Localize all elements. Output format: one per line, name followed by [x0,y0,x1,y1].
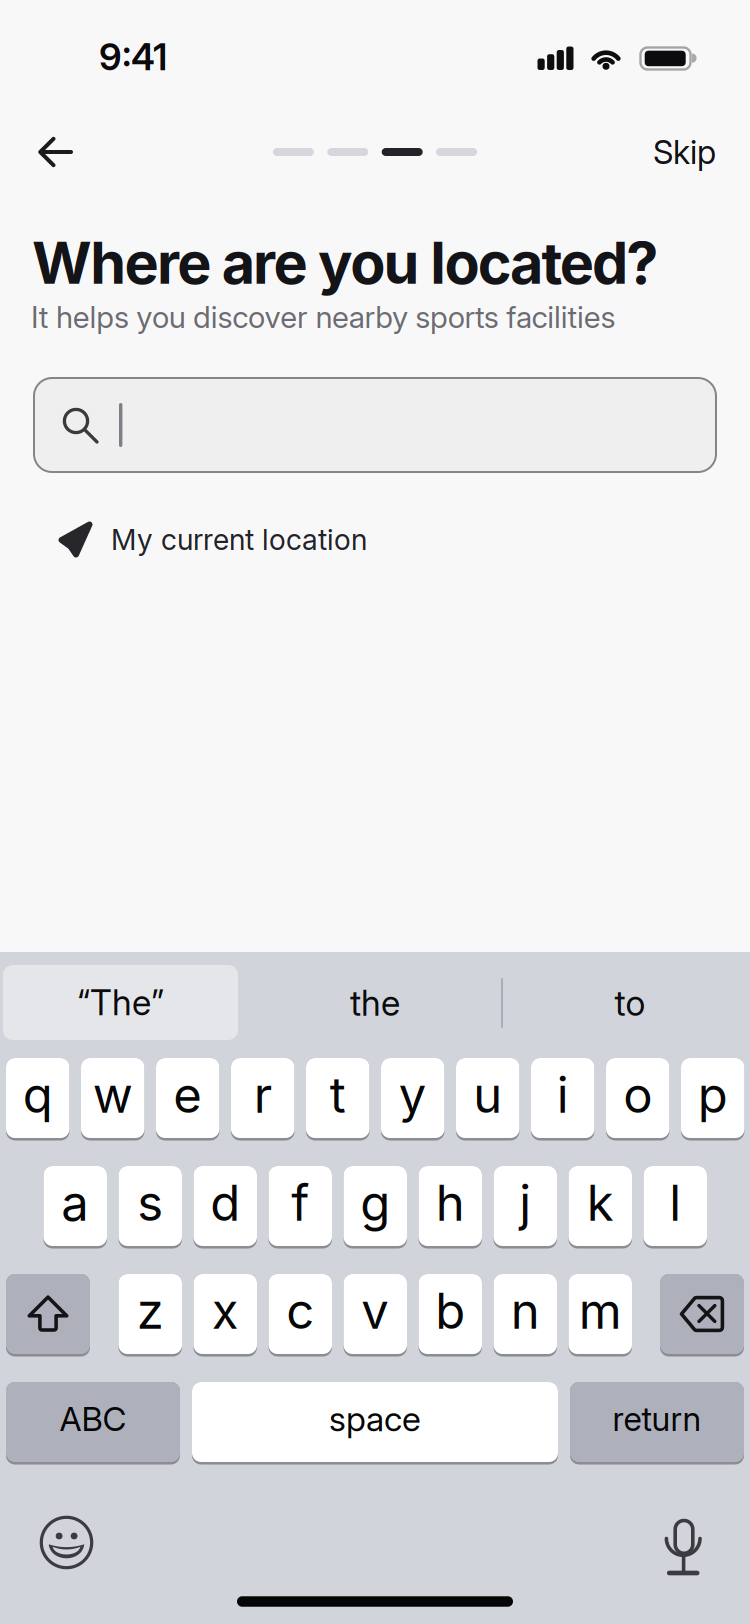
button[interactable]: e [156,1058,219,1140]
button[interactable]: f [268,1166,332,1248]
staticText: s [137,1173,163,1233]
staticText: Where are you located? [32,228,658,298]
button[interactable]: return [570,1382,744,1464]
button[interactable]: q [6,1058,69,1140]
button[interactable]: y [381,1058,444,1140]
button[interactable]: m [568,1274,632,1356]
staticText: q [23,1065,53,1125]
button[interactable]: “The” [3,965,238,1040]
staticText: t [330,1065,346,1125]
staticText: x [212,1281,239,1341]
staticText: z [137,1281,164,1341]
staticText: p [698,1065,728,1125]
button[interactable]: z [118,1274,182,1356]
staticText: k [587,1173,614,1233]
button[interactable]: v [343,1274,407,1356]
button[interactable]: j [493,1166,557,1248]
staticText: m [579,1281,622,1341]
button[interactable]: u [456,1058,519,1140]
staticText: b [435,1281,465,1341]
button[interactable]: Emoji [39,1515,93,1569]
staticText: “The” [77,981,164,1024]
staticText: l [669,1173,681,1233]
button[interactable]: Dictation [664,1518,704,1576]
button[interactable]: p [681,1058,744,1140]
button[interactable]: space [192,1382,558,1464]
staticText: u [473,1065,502,1125]
staticText: to [614,982,645,1024]
button[interactable]: d [193,1166,257,1248]
staticText: h [436,1173,465,1233]
staticText: My current location [111,522,367,557]
staticText: f [291,1173,309,1233]
staticText: c [286,1281,314,1341]
staticText: the [350,982,400,1024]
button[interactable]: o [606,1058,669,1140]
button[interactable]: Delete [660,1274,744,1356]
staticText: e [173,1065,202,1125]
button[interactable]: My current location [58,521,367,558]
staticText: ABC [59,1399,126,1439]
button[interactable]: ABC [6,1382,180,1464]
staticText: a [61,1173,89,1233]
staticText: o [623,1065,652,1125]
staticText: g [360,1173,390,1233]
staticText: Skip [653,132,716,172]
button[interactable]: g [343,1166,407,1248]
button[interactable]: Back [30,129,80,175]
button[interactable]: r [231,1058,294,1140]
staticText: return [612,1399,701,1439]
button[interactable]: x [193,1274,257,1356]
button[interactable]: Search [34,378,716,472]
button[interactable]: s [118,1166,182,1248]
button[interactable]: w [81,1058,144,1140]
button[interactable]: b [418,1274,482,1356]
staticText: v [361,1281,389,1341]
button[interactable]: Skip [647,124,722,180]
button[interactable]: l [643,1166,707,1248]
staticText: space [329,1398,421,1439]
staticText: w [93,1065,133,1125]
button[interactable]: c [268,1274,332,1356]
staticText: r [254,1065,272,1125]
button[interactable]: Shift [6,1274,90,1356]
staticText: 9:41 [99,35,167,79]
button[interactable]: t [306,1058,369,1140]
button[interactable]: n [493,1274,557,1356]
staticText: j [519,1173,531,1233]
button[interactable]: the [275,965,475,1040]
button[interactable]: a [43,1166,107,1248]
button[interactable]: i [531,1058,594,1140]
button[interactable]: to [530,965,730,1040]
staticText: It helps you discover nearby sports faci… [31,299,615,335]
staticText: n [511,1281,540,1341]
staticText: d [210,1173,240,1233]
button[interactable]: k [568,1166,632,1248]
button[interactable]: h [418,1166,482,1248]
staticText: i [557,1065,569,1125]
staticText: y [399,1065,427,1125]
